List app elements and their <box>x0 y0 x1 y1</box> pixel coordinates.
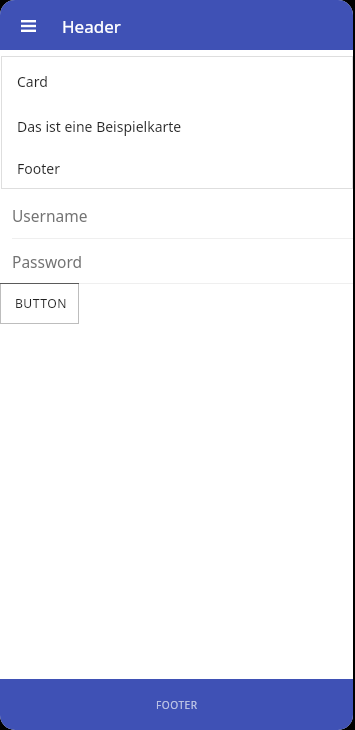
button[interactable]: FOOTER <box>0 679 353 730</box>
button[interactable]: Username <box>0 194 353 239</box>
staticText: FOOTER <box>156 698 198 712</box>
button[interactable]: Open navigation menu <box>13 11 43 41</box>
button[interactable]: BUTTON <box>0 283 79 324</box>
button[interactable]: Card <box>1 56 353 189</box>
staticText: Das ist eine Beispielkarte <box>17 117 182 136</box>
staticText: Password <box>12 251 83 272</box>
button[interactable]: Password <box>0 239 353 284</box>
staticText: BUTTON <box>15 295 67 312</box>
staticText: Footer <box>17 159 60 178</box>
staticText: Username <box>12 205 88 226</box>
staticText: Header <box>62 15 121 38</box>
staticText: Card <box>17 72 48 91</box>
